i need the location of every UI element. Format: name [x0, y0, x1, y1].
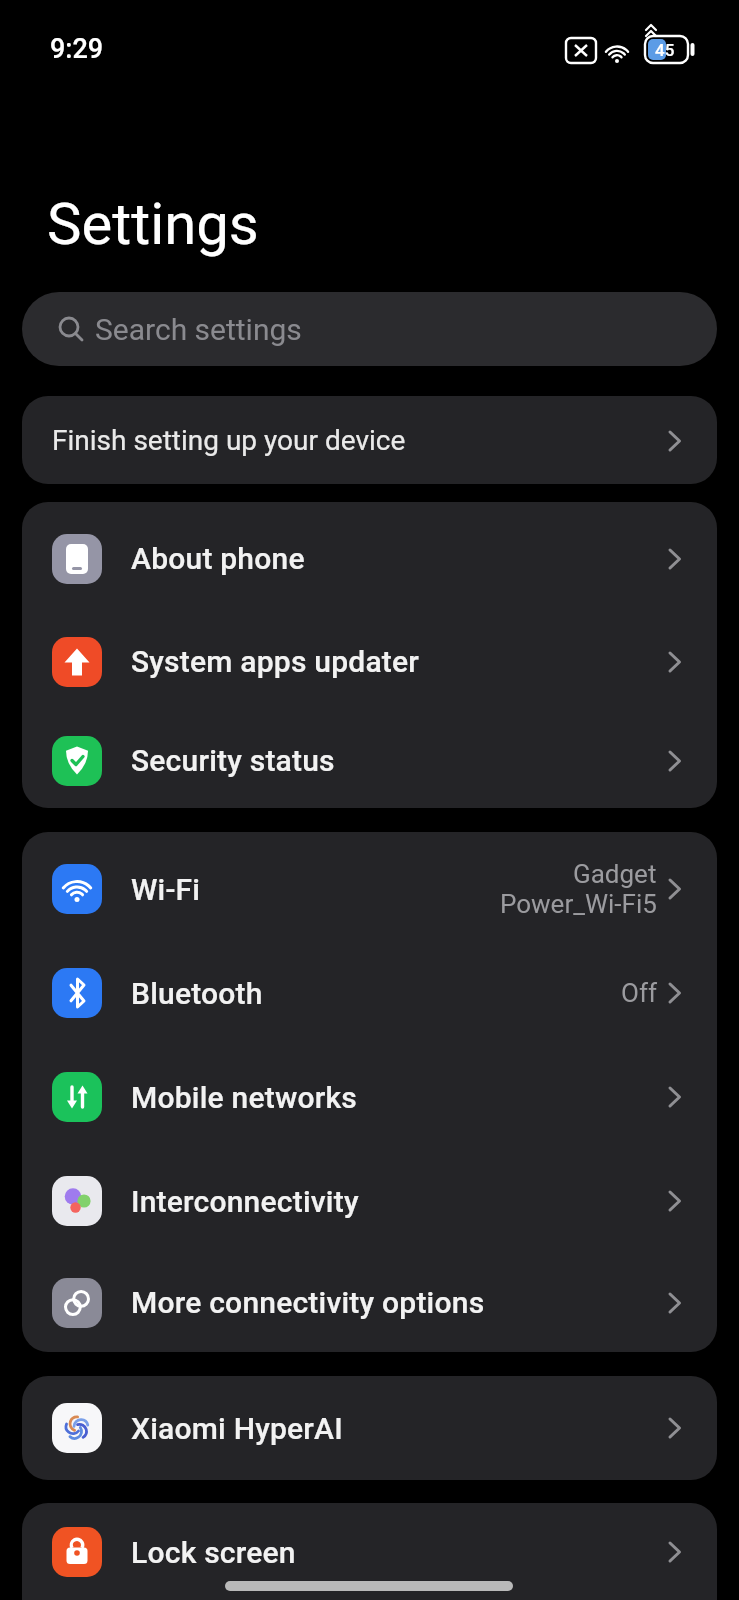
- staticText: Xiaomi HyperAI: [131, 1411, 343, 1446]
- staticText: Off: [621, 978, 657, 1008]
- staticText: About phone: [131, 541, 305, 576]
- button[interactable]: System apps updater: [22, 610, 717, 713]
- button[interactable]: About phone: [22, 507, 717, 610]
- staticText: Interconnectivity: [131, 1184, 359, 1219]
- staticText: Security status: [131, 743, 335, 778]
- staticText: Wi-Fi: [131, 872, 201, 907]
- button[interactable]: Interconnectivity: [22, 1149, 717, 1253]
- staticText: Settings: [47, 190, 259, 258]
- staticText: 9:29: [50, 33, 104, 65]
- staticText: Power_Wi-Fi5: [500, 889, 657, 919]
- button[interactable]: Bluetooth: [22, 941, 717, 1045]
- staticText: Search settings: [95, 312, 302, 347]
- staticText: More connectivity options: [131, 1285, 485, 1320]
- button[interactable]: Xiaomi HyperAI: [22, 1376, 717, 1480]
- staticText: System apps updater: [131, 644, 420, 679]
- staticText: 45: [655, 40, 675, 60]
- button[interactable]: Lock screen: [22, 1503, 717, 1600]
- button[interactable]: More connectivity options: [22, 1253, 717, 1352]
- staticText: Gadget: [573, 859, 657, 889]
- staticText: Bluetooth: [131, 976, 263, 1011]
- button[interactable]: Finish setting up your device: [22, 396, 717, 484]
- button[interactable]: Wi-Fi: [22, 837, 717, 941]
- staticText: Finish setting up your device: [52, 424, 406, 457]
- button[interactable]: Security status: [22, 713, 717, 808]
- button[interactable]: Search settings: [22, 292, 717, 366]
- button[interactable]: Mobile networks: [22, 1045, 717, 1149]
- staticText: Mobile networks: [131, 1080, 358, 1115]
- staticText: Lock screen: [131, 1535, 296, 1570]
